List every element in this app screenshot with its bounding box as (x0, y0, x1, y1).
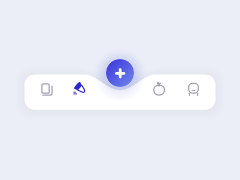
button[interactable]: Library (32, 74, 62, 104)
button[interactable]: Add (106, 59, 134, 87)
button[interactable]: Profile (179, 74, 209, 104)
button[interactable]: Nutrition (144, 74, 174, 104)
button[interactable]: Announcements (67, 74, 97, 104)
